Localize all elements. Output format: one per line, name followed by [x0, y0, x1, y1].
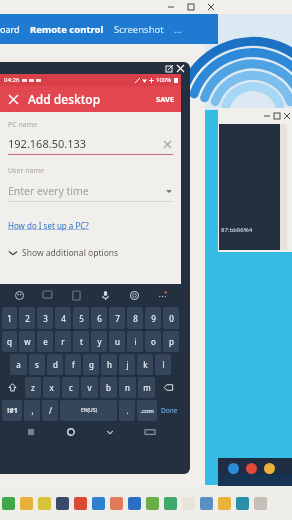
- button[interactable]: Taskbar app: [200, 497, 213, 510]
- button[interactable]: Close: [4, 90, 22, 108]
- button[interactable]: s: [29, 354, 45, 375]
- button[interactable]: c: [62, 377, 79, 398]
- button[interactable]: Shift: [2, 377, 23, 398]
- button[interactable]: Taskbar app: [236, 497, 249, 510]
- button[interactable]: .com: [137, 400, 157, 421]
- staticText: b: [106, 382, 111, 393]
- button[interactable]: 4: [55, 307, 71, 329]
- button[interactable]: Screenshot: [114, 23, 164, 36]
- button[interactable]: q: [2, 331, 17, 352]
- button[interactable]: g: [83, 354, 99, 375]
- button[interactable]: Taskbar app: [56, 497, 69, 510]
- button[interactable]: App: [246, 463, 257, 474]
- button[interactable]: r: [55, 331, 71, 352]
- staticText: 192.168.50.133: [8, 136, 161, 151]
- button[interactable]: Close: [175, 63, 186, 74]
- button[interactable]: i: [127, 331, 143, 352]
- button[interactable]: a: [10, 354, 27, 375]
- button[interactable]: Clipboard: [66, 285, 86, 305]
- button[interactable]: Taskbar app: [20, 497, 33, 510]
- button[interactable]: p: [163, 331, 179, 352]
- button[interactable]: App: [264, 463, 275, 474]
- button[interactable]: Taskbar app: [92, 497, 105, 510]
- button[interactable]: n: [119, 377, 136, 398]
- button[interactable]: Taskbar app: [218, 497, 231, 510]
- button[interactable]: Taskbar app: [146, 497, 159, 510]
- button[interactable]: l: [155, 354, 171, 375]
- button[interactable]: Emoji: [9, 285, 29, 305]
- button[interactable]: .: [119, 400, 135, 421]
- button[interactable]: w: [19, 331, 35, 352]
- button[interactable]: 0: [163, 307, 179, 329]
- button[interactable]: x: [43, 377, 60, 398]
- button[interactable]: 6: [91, 307, 107, 329]
- button[interactable]: How do I set up a PC?: [8, 220, 89, 231]
- button[interactable]: 1: [2, 307, 17, 329]
- button[interactable]: Taskbar app: [254, 497, 267, 510]
- button[interactable]: Backspace: [157, 377, 179, 398]
- button[interactable]: e: [37, 331, 53, 352]
- button[interactable]: More options: [152, 285, 172, 305]
- button[interactable]: Show additional options: [8, 247, 119, 259]
- button[interactable]: z: [25, 377, 41, 398]
- button[interactable]: 8: [127, 307, 143, 329]
- button[interactable]: SAVE: [150, 94, 181, 104]
- staticText: j: [126, 359, 129, 370]
- button[interactable]: t: [73, 331, 89, 352]
- button[interactable]: Taskbar app: [38, 497, 51, 510]
- staticText: 100%: [156, 76, 172, 84]
- button[interactable]: Close: [282, 111, 292, 121]
- button[interactable]: EN(US): [60, 400, 117, 421]
- button[interactable]: y: [91, 331, 107, 352]
- button[interactable]: Taskbar app: [128, 497, 141, 510]
- button[interactable]: Home: [62, 423, 80, 441]
- button[interactable]: Minimize: [262, 111, 272, 121]
- button[interactable]: j: [119, 354, 135, 375]
- button[interactable]: Done: [159, 400, 179, 421]
- button[interactable]: 3: [37, 307, 53, 329]
- button[interactable]: oard: [0, 23, 20, 35]
- button[interactable]: Maximize: [272, 111, 282, 121]
- button[interactable]: k: [137, 354, 153, 375]
- staticText: u: [115, 336, 120, 347]
- staticText: EN(US): [81, 407, 97, 414]
- button[interactable]: b: [100, 377, 117, 398]
- button[interactable]: Minimize: [166, 2, 176, 12]
- button[interactable]: App: [228, 463, 239, 474]
- button[interactable]: Clear: [161, 138, 173, 150]
- button[interactable]: Taskbar app: [164, 497, 177, 510]
- button[interactable]: ...: [174, 23, 182, 36]
- button[interactable]: Hide keyboard: [101, 423, 119, 441]
- button[interactable]: Taskbar app: [2, 497, 15, 510]
- button[interactable]: Settings: [124, 285, 144, 305]
- button[interactable]: 9: [145, 307, 161, 329]
- button[interactable]: Maximize: [186, 2, 196, 12]
- button[interactable]: Taskbar app: [110, 497, 123, 510]
- button[interactable]: o: [145, 331, 161, 352]
- button[interactable]: Stickers: [37, 285, 57, 305]
- button[interactable]: Keyboard: [141, 423, 159, 441]
- button[interactable]: 5: [73, 307, 89, 329]
- button[interactable]: u: [109, 331, 125, 352]
- button[interactable]: Enter every time: [8, 184, 173, 198]
- button[interactable]: 2: [19, 307, 35, 329]
- button[interactable]: h: [101, 354, 117, 375]
- button[interactable]: Remote control: [30, 23, 104, 36]
- button[interactable]: v: [81, 377, 98, 398]
- button[interactable]: ,: [24, 400, 40, 421]
- button[interactable]: 7: [109, 307, 125, 329]
- button[interactable]: Popout: [164, 63, 175, 74]
- button[interactable]: Recents: [22, 423, 40, 441]
- button[interactable]: !#1: [2, 400, 22, 421]
- button[interactable]: Close: [206, 2, 216, 12]
- button[interactable]: Voice input: [95, 285, 115, 305]
- button[interactable]: m: [138, 377, 155, 398]
- button[interactable]: Taskbar app: [74, 497, 87, 510]
- button[interactable]: f: [65, 354, 81, 375]
- button[interactable]: /: [42, 400, 58, 421]
- button[interactable]: d: [47, 354, 63, 375]
- staticText: !#1: [7, 406, 18, 416]
- button[interactable]: 192.168.50.133: [8, 136, 173, 151]
